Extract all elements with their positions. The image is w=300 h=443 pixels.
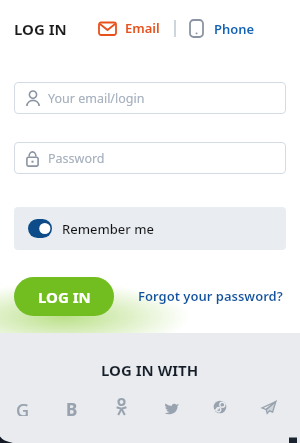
staticText: G [16, 398, 30, 416]
button[interactable]: Phone [189, 19, 255, 38]
staticText: LOG IN WITH [101, 360, 199, 380]
button[interactable]: Your email/login [14, 82, 286, 114]
button[interactable]: Remember me [14, 207, 286, 250]
staticText: Your email/login [48, 90, 145, 107]
staticText: Email [125, 19, 160, 37]
button[interactable] [112, 398, 130, 416]
button[interactable]: B [63, 398, 81, 416]
staticText: Forgot your password? [138, 287, 283, 305]
button[interactable]: Email [98, 19, 160, 37]
staticText: Phone [214, 20, 255, 38]
staticText: B [66, 398, 78, 416]
staticText: LOG IN [38, 287, 91, 307]
button[interactable]: G [14, 398, 32, 416]
staticText: Remember me [62, 220, 154, 238]
staticText: LOG IN [14, 19, 67, 39]
button[interactable] [211, 398, 229, 416]
button[interactable]: LOG IN [14, 277, 114, 316]
button[interactable]: Password [14, 142, 286, 174]
button[interactable]: Forgot your password? [130, 277, 290, 315]
button[interactable] [162, 398, 180, 416]
button[interactable] [260, 398, 278, 416]
staticText: Password [48, 150, 105, 167]
